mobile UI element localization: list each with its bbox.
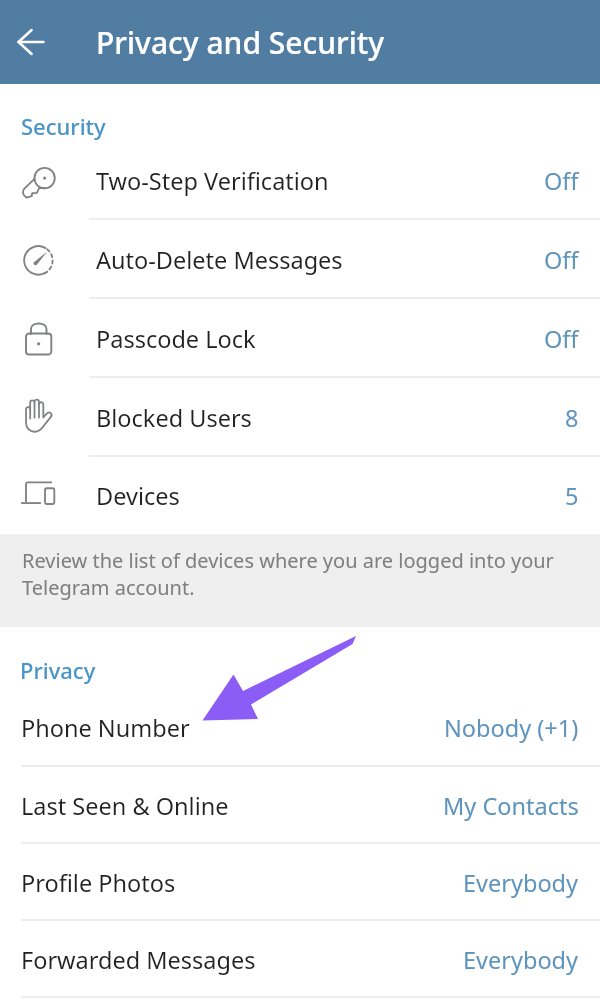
staticText: Forwarded Messages: [21, 944, 256, 976]
staticText: Security: [21, 111, 106, 141]
staticText: Profile Photos: [21, 867, 176, 899]
staticText: Off: [544, 244, 579, 276]
staticText: Privacy: [20, 655, 96, 685]
staticText: Last Seen & Online: [21, 790, 229, 822]
staticText: Nobody (+1): [444, 712, 579, 744]
button[interactable]: Phone Number: [0, 689, 600, 767]
staticText: Two-Step Verification: [96, 165, 329, 197]
staticText: Devices: [96, 480, 180, 512]
staticText: 5: [565, 480, 579, 512]
staticText: Blocked Users: [96, 402, 252, 434]
button[interactable]: Passcode Lock: [0, 299, 600, 378]
staticText: Off: [544, 165, 579, 197]
button[interactable]: Forwarded Messages: [0, 921, 600, 998]
button[interactable]: Two-Step Verification: [0, 141, 600, 220]
staticText: Auto-Delete Messages: [96, 244, 343, 276]
staticText: Passcode Lock: [96, 323, 256, 355]
button[interactable]: Profile Photos: [0, 844, 600, 921]
staticText: My Contacts: [443, 790, 579, 822]
staticText: Off: [544, 323, 579, 355]
staticText: Review the list of devices where you are…: [22, 547, 582, 601]
staticText: 8: [565, 402, 579, 434]
button[interactable]: Last Seen & Online: [0, 767, 600, 844]
button[interactable]: Auto-Delete Messages: [0, 220, 600, 299]
staticText: Everybody: [463, 867, 579, 899]
staticText: Phone Number: [21, 712, 190, 744]
button[interactable]: Devices: [0, 457, 600, 534]
staticText: Privacy and Security: [96, 22, 385, 63]
button[interactable]: Blocked Users: [0, 378, 600, 457]
button[interactable]: Back: [0, 0, 62, 84]
staticText: Everybody: [463, 944, 579, 976]
